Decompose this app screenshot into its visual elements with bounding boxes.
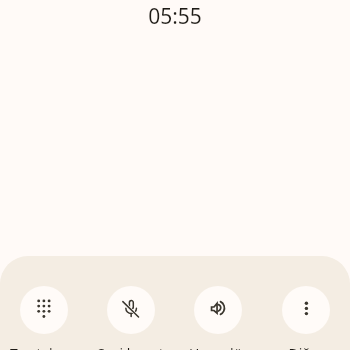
button[interactable]: Tuş takımı xyxy=(0,286,87,350)
button[interactable]: Diğer xyxy=(262,286,350,350)
staticText: Sesi kapat xyxy=(97,344,164,350)
staticText: Hoparlör xyxy=(189,344,248,350)
button[interactable]: Sesi kapat xyxy=(87,286,174,350)
staticText: 05:55 xyxy=(148,2,202,31)
staticText: Diğer xyxy=(288,344,325,350)
staticText: Tuş takımı xyxy=(10,344,77,350)
button[interactable]: Hoparlör xyxy=(174,286,262,350)
